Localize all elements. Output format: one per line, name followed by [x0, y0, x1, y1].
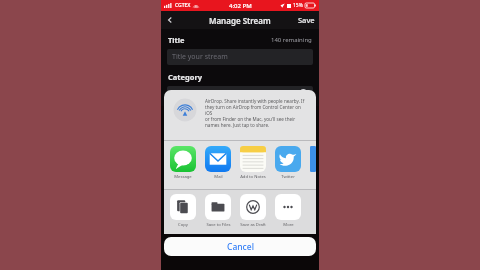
staticText: Add to Notes	[240, 174, 266, 180]
staticText: Message	[174, 174, 192, 180]
button[interactable]: More	[275, 194, 301, 228]
staticText: 140 remaining	[271, 36, 312, 44]
staticText: Mail	[214, 174, 223, 180]
button[interactable]: AirDrop. Share instantly with people nea…	[164, 90, 316, 140]
staticText: More	[283, 222, 294, 228]
staticText: Twitter	[281, 174, 295, 180]
staticText: Manage Stream	[209, 15, 271, 26]
button[interactable]: Copy	[170, 194, 196, 228]
staticText: Copy	[178, 222, 188, 228]
staticText: 15%	[293, 2, 303, 9]
button[interactable]: Save	[298, 15, 315, 25]
staticText: Title	[168, 35, 185, 45]
button[interactable]: Add to Notes	[240, 146, 266, 180]
staticText: 4:02 PM	[229, 2, 252, 10]
staticText: they turn on AirDrop from Control Center…	[205, 104, 308, 116]
staticText: Category	[168, 72, 203, 82]
button[interactable]: Mail	[205, 146, 231, 180]
staticText: CGTEX	[175, 2, 191, 9]
button[interactable]: Save to Files	[205, 194, 231, 228]
staticText: names here. Just tap to share.	[205, 122, 270, 128]
staticText: Title your stream	[172, 52, 228, 62]
button[interactable]: Message	[170, 146, 196, 180]
staticText: Cancel	[227, 241, 254, 253]
button[interactable]: Back	[163, 13, 177, 27]
button[interactable]: Cancel	[164, 237, 316, 256]
button[interactable]: Twitter	[275, 146, 301, 180]
button[interactable]: Save as Draft	[240, 194, 266, 228]
button[interactable]: Search category	[167, 86, 313, 100]
staticText: AirDrop. Share instantly with people nea…	[205, 98, 305, 104]
staticText: Save as Draft	[240, 222, 266, 228]
staticText: or from Finder on the Mac, you'll see th…	[205, 116, 296, 122]
staticText: Save to Files	[206, 222, 231, 228]
staticText: Save	[298, 15, 315, 25]
button[interactable]: More apps	[310, 146, 316, 174]
button[interactable]: Title your stream	[167, 49, 313, 65]
